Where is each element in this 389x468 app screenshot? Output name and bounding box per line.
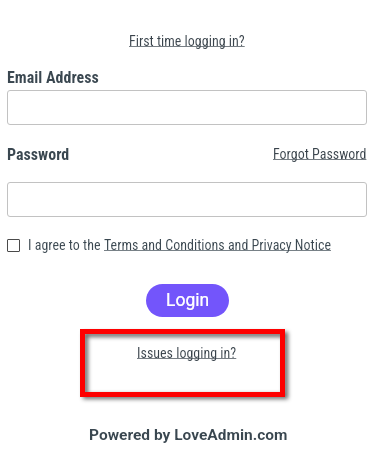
- button[interactable]: I agree to the: [7, 237, 331, 253]
- button[interactable]: Email Address input field: [7, 90, 367, 125]
- staticText: Password: [7, 145, 70, 164]
- staticText: I agree to the: [28, 237, 104, 253]
- button[interactable]: Password input field: [7, 182, 367, 217]
- staticText: Forgot Password: [273, 146, 367, 162]
- staticText: Powered by LoveAdmin.com: [89, 426, 288, 444]
- staticText: Email Address: [7, 68, 99, 87]
- staticText: First time logging in?: [129, 33, 245, 49]
- staticText: Terms and Conditions and Privacy Notice: [104, 237, 331, 253]
- button[interactable]: First time logging in?: [129, 33, 245, 49]
- button[interactable]: Forgot Password: [273, 146, 367, 162]
- button[interactable]: Login: [146, 284, 229, 317]
- button[interactable]: Issues logging in?: [137, 345, 237, 361]
- staticText: Issues logging in?: [137, 345, 237, 361]
- staticText: Login: [166, 290, 210, 311]
